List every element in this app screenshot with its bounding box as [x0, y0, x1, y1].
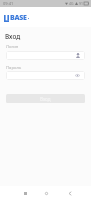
staticText: 4G: [69, 1, 74, 6]
button[interactable]: Recents: [18, 186, 32, 200]
button[interactable]: [6, 51, 85, 60]
staticText: 91: [79, 1, 83, 6]
staticText: BASE: [10, 13, 27, 23]
staticText: Вход: [5, 32, 21, 41]
button[interactable]: Back: [63, 186, 77, 200]
button[interactable]: Home: [39, 186, 53, 200]
button[interactable]: [6, 71, 85, 80]
staticText: Логин: [6, 44, 19, 50]
staticText: 09:41: [3, 1, 14, 6]
staticText: Пароль: [6, 65, 22, 71]
staticText: Вход: [40, 96, 51, 102]
